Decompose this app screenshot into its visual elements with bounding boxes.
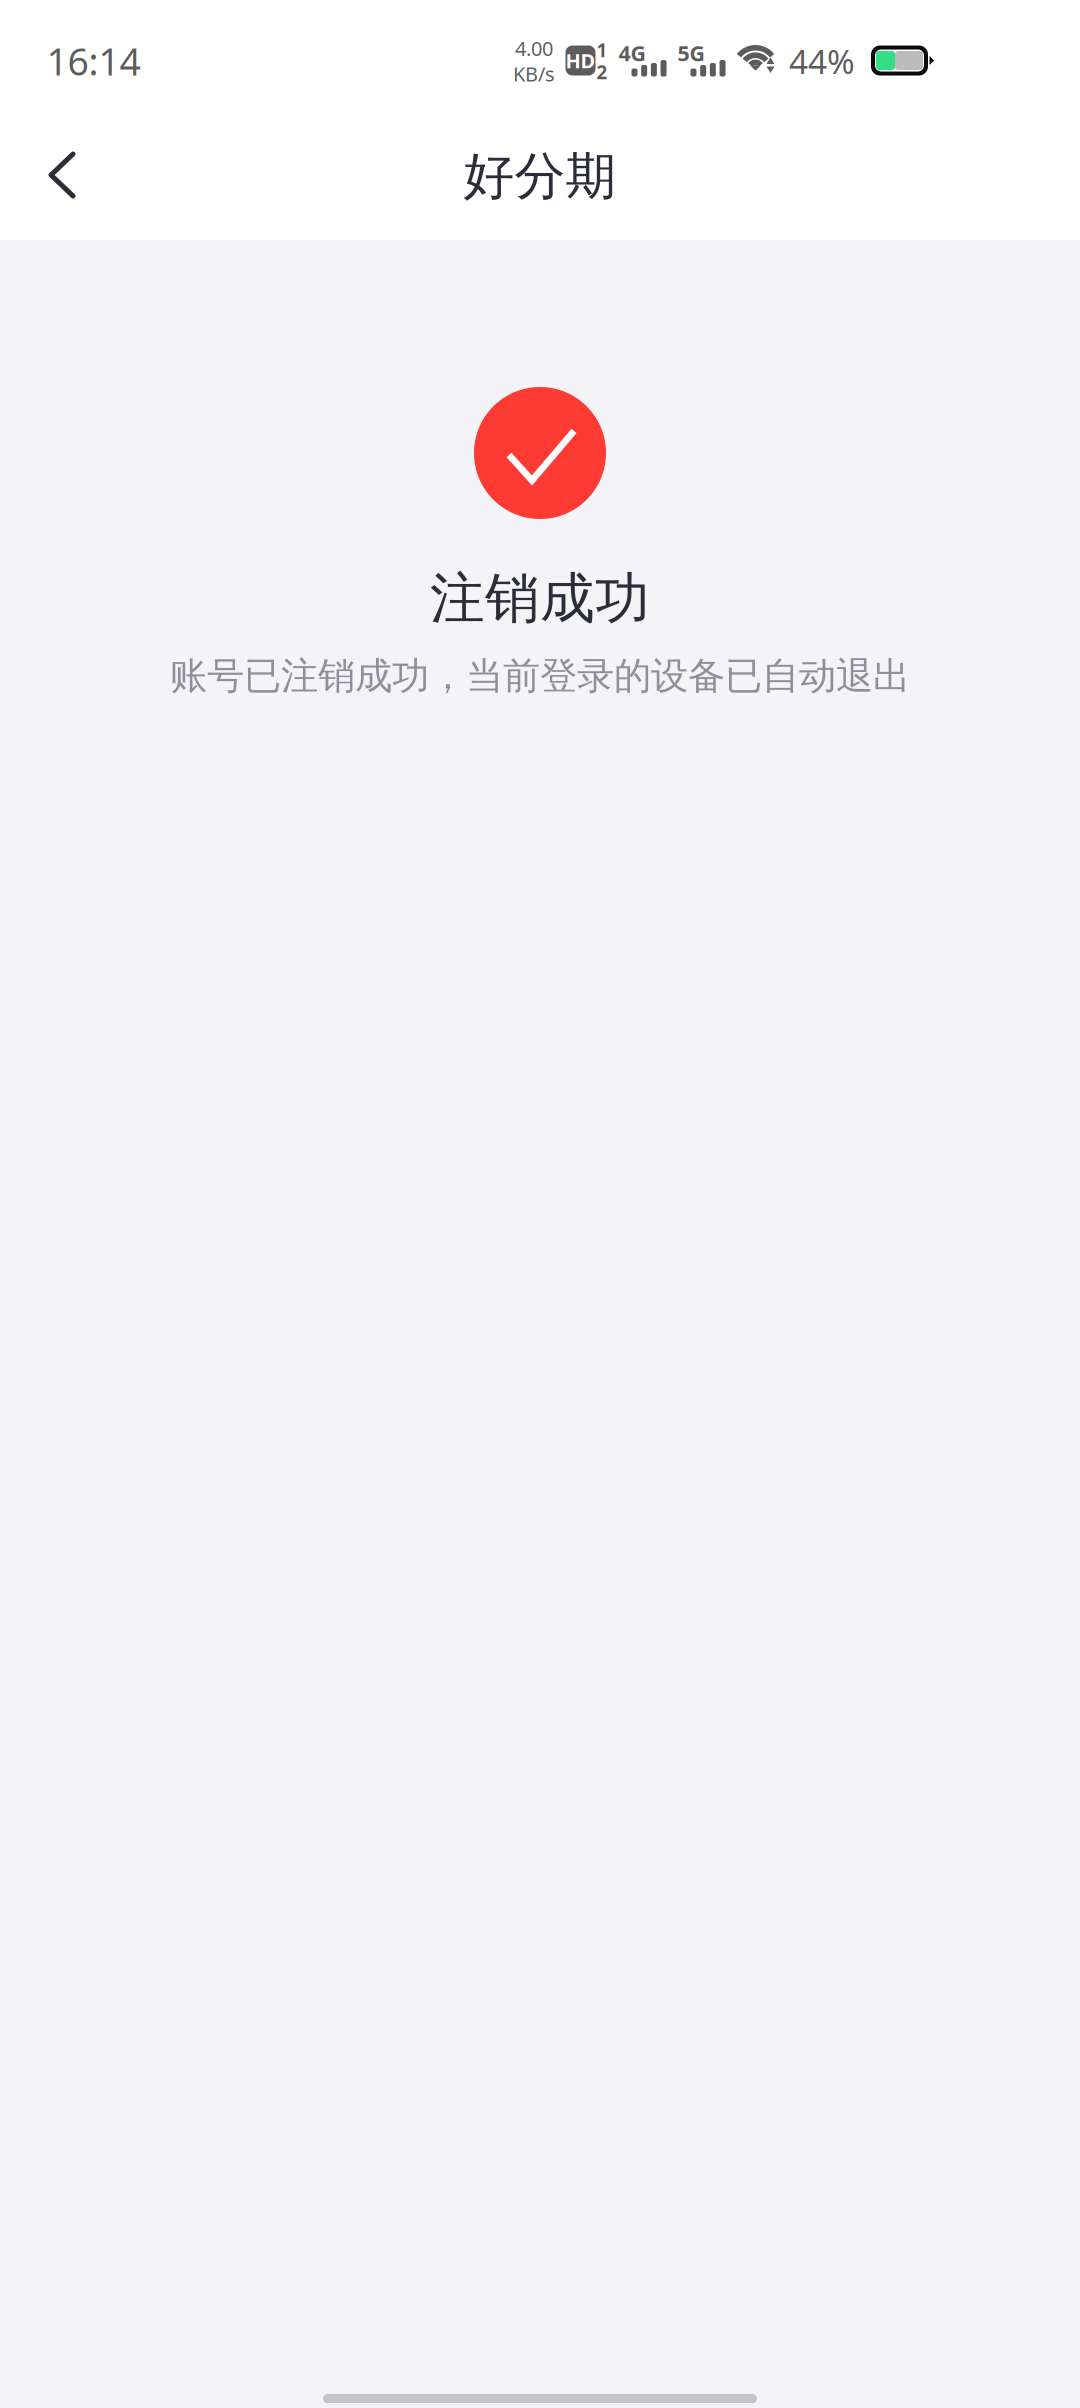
staticText: 4.00 bbox=[515, 35, 553, 61]
staticText: 好分期 bbox=[463, 145, 616, 208]
staticText: 44% bbox=[789, 39, 855, 83]
staticText: 4G bbox=[618, 39, 645, 67]
button[interactable]: 返回 bbox=[16, 121, 108, 229]
staticText: 1 bbox=[596, 38, 607, 62]
staticText: KB/s bbox=[513, 60, 555, 87]
staticText: 5G bbox=[677, 39, 704, 67]
staticText: 账号已注销成功，当前登录的设备已自动退出 bbox=[170, 653, 910, 699]
staticText: 2 bbox=[596, 59, 607, 84]
staticText: 16:14 bbox=[46, 36, 140, 86]
staticText: HD bbox=[565, 47, 595, 74]
staticText: 注销成功 bbox=[430, 565, 650, 632]
